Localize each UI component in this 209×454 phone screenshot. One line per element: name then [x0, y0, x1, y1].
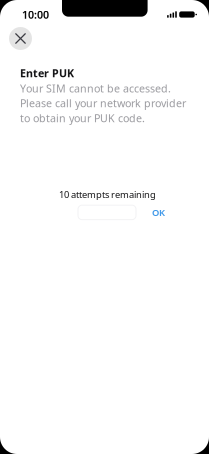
- staticText: Please call your network provider: [20, 96, 186, 110]
- button[interactable]: OK: [152, 206, 165, 219]
- staticText: 10 attempts remaining: [59, 188, 156, 201]
- button[interactable]: Close: [9, 27, 32, 50]
- staticText: Your SIM cannot be accessed.: [20, 81, 171, 95]
- staticText: OK: [152, 206, 165, 219]
- staticText: to obtain your PUK code.: [20, 111, 145, 125]
- staticText: 10:00: [22, 7, 49, 22]
- staticText: Enter PUK: [20, 66, 74, 80]
